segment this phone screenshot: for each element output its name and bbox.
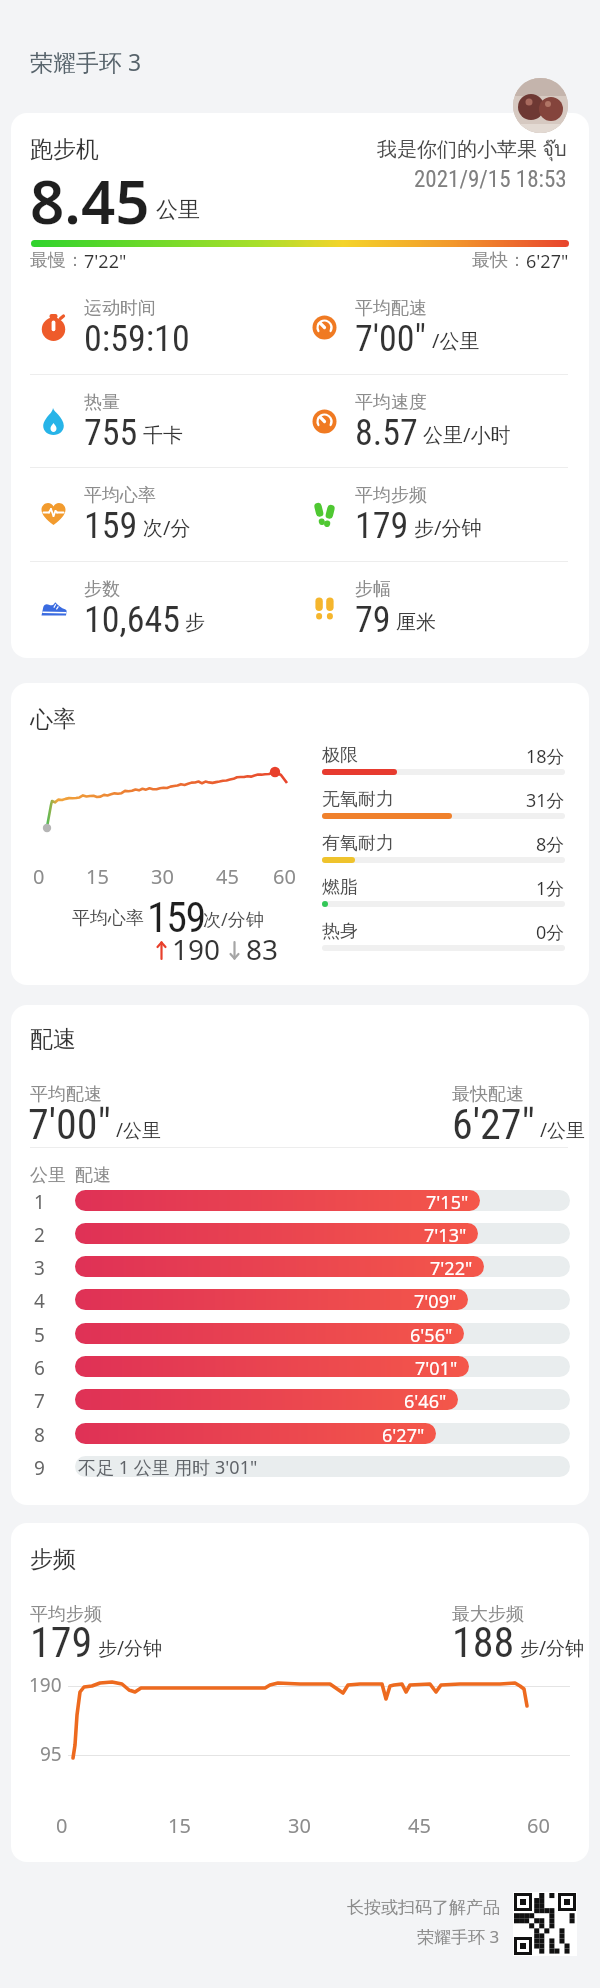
staticText: 热身 — [322, 920, 358, 943]
staticText: 18分 — [526, 744, 565, 769]
staticText: 9 — [34, 1455, 45, 1481]
staticText: 15 — [168, 1812, 191, 1839]
staticText: 0分 — [536, 920, 565, 945]
staticText: 7'09" — [414, 1289, 457, 1310]
staticText: 最快配速 — [452, 1083, 524, 1106]
staticText: 8.45 — [30, 160, 150, 242]
staticText: 190 — [172, 930, 221, 968]
staticText: 7'00" — [355, 318, 427, 360]
button[interactable] — [11, 1523, 589, 1862]
button[interactable] — [513, 78, 568, 133]
staticText: 4 — [34, 1288, 45, 1314]
staticText: 6'27" — [526, 249, 569, 274]
staticText: 6'27" — [452, 1100, 535, 1149]
staticText: 83 — [246, 930, 279, 968]
staticText: 我是你们的小苹果 จุ๊บ — [377, 133, 567, 165]
staticText: 79 — [355, 599, 391, 641]
button[interactable] — [11, 113, 589, 658]
staticText: 公里 — [156, 196, 200, 224]
staticText: 7'13" — [424, 1223, 467, 1244]
staticText: 步频 — [30, 1545, 76, 1574]
staticText: 步 — [185, 610, 205, 635]
staticText: 6'46" — [404, 1389, 447, 1410]
staticText: 31分 — [526, 788, 565, 813]
staticText: 荣耀手环 3 — [30, 46, 142, 77]
staticText: 运动时间 — [84, 297, 156, 320]
staticText: 平均步频 — [30, 1603, 102, 1626]
staticText: 8.57 — [355, 412, 418, 454]
staticText: 极限 — [322, 744, 358, 767]
staticText: 179 — [355, 505, 409, 547]
staticText: 步/分钟 — [98, 1635, 163, 1661]
staticText: 平均心率 — [84, 484, 156, 507]
staticText: 45 — [408, 1812, 431, 1839]
staticText: 无氧耐力 — [322, 788, 394, 811]
staticText: 1 — [34, 1189, 45, 1215]
staticText: 10,645 — [84, 599, 180, 641]
staticText: 0 — [56, 1812, 68, 1839]
staticText: 159 — [84, 505, 138, 547]
staticText: 7 — [34, 1388, 45, 1414]
staticText: 60 — [527, 1812, 550, 1839]
staticText: 步/分钟 — [414, 514, 482, 541]
staticText: 最慢： — [30, 249, 84, 272]
staticText: 15 — [86, 863, 109, 890]
staticText: 次/分钟 — [203, 907, 264, 932]
staticText: 159 — [147, 893, 205, 942]
staticText: 0:59:10 — [84, 318, 190, 360]
staticText: 1分 — [536, 876, 565, 901]
staticText: 0 — [33, 863, 45, 890]
staticText: 30 — [151, 863, 174, 890]
staticText: 179 — [30, 1618, 93, 1667]
staticText: 6'27" — [382, 1423, 425, 1444]
staticText: 步数 — [84, 578, 120, 601]
staticText: 配速 — [75, 1164, 111, 1187]
staticText: 188 — [452, 1618, 515, 1667]
staticText: 5 — [34, 1322, 45, 1348]
staticText: /公里 — [540, 1117, 586, 1143]
staticText: 公里/小时 — [423, 421, 511, 448]
staticText: 2021/9/15 18:53 — [414, 166, 567, 193]
staticText: 次/分 — [143, 514, 191, 541]
staticText: 不足 1 公里 用时 3'01" — [78, 1455, 258, 1480]
staticText: 燃脂 — [322, 876, 358, 899]
staticText: 7'22" — [430, 1256, 473, 1277]
button[interactable] — [11, 1005, 589, 1505]
staticText: 平均配速 — [30, 1083, 102, 1106]
staticText: 7'01" — [415, 1356, 458, 1377]
button[interactable] — [11, 683, 589, 985]
staticText: 平均步频 — [355, 484, 427, 507]
staticText: 平均心率 — [72, 907, 144, 930]
staticText: 长按或扫码了解产品 — [347, 1897, 500, 1918]
staticText: 190 — [29, 1672, 62, 1698]
staticText: 步幅 — [355, 578, 391, 601]
staticText: 45 — [216, 863, 239, 890]
staticText: 755 — [84, 412, 138, 454]
staticText: 厘米 — [396, 610, 436, 635]
staticText: 最大步频 — [452, 1603, 524, 1626]
staticText: 6 — [34, 1355, 45, 1381]
staticText: 平均配速 — [355, 297, 427, 320]
staticText: 6'56" — [410, 1323, 453, 1344]
staticText: 公里 — [30, 1164, 66, 1187]
staticText: 最快： — [472, 249, 526, 272]
staticText: 8 — [34, 1422, 45, 1448]
staticText: 7'22" — [84, 249, 127, 274]
staticText: 95 — [40, 1741, 62, 1767]
staticText: 60 — [273, 863, 296, 890]
staticText: 配速 — [30, 1025, 76, 1054]
button[interactable] — [513, 1892, 577, 1956]
staticText: 8分 — [536, 832, 565, 857]
staticText: 跑步机 — [30, 135, 99, 164]
staticText: 心率 — [30, 705, 76, 734]
staticText: 3 — [34, 1255, 45, 1281]
staticText: /公里 — [116, 1117, 162, 1143]
staticText: 有氧耐力 — [322, 832, 394, 855]
staticText: /公里 — [432, 327, 480, 354]
staticText: 2 — [34, 1222, 45, 1248]
staticText: 荣耀手环 3 — [417, 1925, 500, 1948]
staticText: 千卡 — [143, 423, 183, 448]
staticText: 7'00" — [28, 1100, 111, 1149]
staticText: 步/分钟 — [520, 1635, 585, 1661]
staticText: 平均速度 — [355, 391, 427, 414]
